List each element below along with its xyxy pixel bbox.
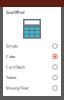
- staticText: Card Stack: [6, 64, 25, 70]
- staticText: Cube: [6, 54, 15, 59]
- staticText: Tablet: [6, 75, 16, 80]
- button[interactable]: Cube: [3, 51, 61, 62]
- button[interactable]: Tablet: [3, 72, 61, 83]
- button[interactable]: Card Stack: [3, 62, 61, 72]
- button[interactable]: Moving Float: [3, 83, 61, 93]
- button[interactable]: Simple: [3, 41, 61, 51]
- staticText: Simple: [6, 43, 18, 49]
- staticText: Moving Float: [6, 85, 28, 91]
- staticText: SizeOfRed: [6, 9, 24, 15]
